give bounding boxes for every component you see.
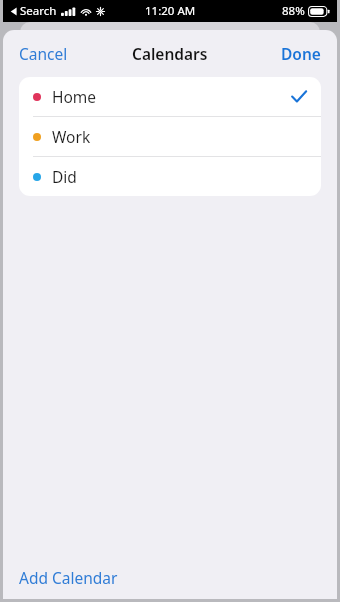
staticText: Calendars [132, 43, 208, 64]
button[interactable]: Did [19, 157, 321, 196]
staticText: Add Calendar [19, 567, 118, 588]
staticText: Search [20, 3, 57, 19]
staticText: Cancel [19, 43, 68, 64]
staticText: 88% [282, 3, 305, 19]
button[interactable]: Work [19, 117, 321, 156]
button[interactable]: Home [19, 77, 321, 116]
button[interactable]: Cancel [3, 33, 84, 74]
button[interactable]: Add Calendar [3, 555, 337, 599]
staticText: Done [281, 43, 321, 64]
staticText: Work [52, 126, 91, 147]
staticText: Home [52, 86, 97, 107]
staticText: 11:20 AM [145, 3, 196, 19]
staticText: Did [52, 166, 77, 187]
button[interactable]: Done [265, 33, 337, 74]
